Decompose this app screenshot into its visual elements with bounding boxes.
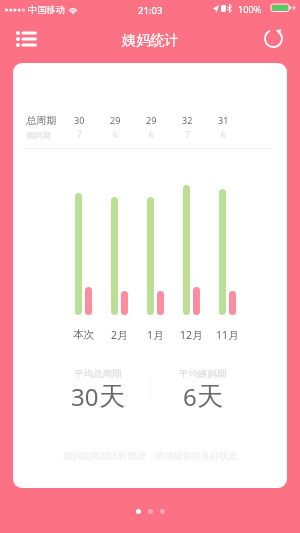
staticText: 姨妈统计	[122, 31, 179, 49]
staticText: 平均总周期	[74, 368, 122, 380]
staticText: 7	[77, 129, 82, 140]
staticText: 31	[218, 114, 229, 126]
staticText: 32	[182, 114, 193, 126]
staticText: 7	[185, 129, 190, 140]
staticText: 29	[110, 114, 121, 126]
staticText: 21:03	[138, 4, 163, 17]
staticText: 12月	[180, 328, 203, 342]
staticText: 本次	[73, 328, 94, 341]
staticText: 天	[99, 380, 125, 413]
staticText: 30	[74, 114, 85, 126]
staticText: 中国移动	[28, 4, 65, 16]
staticText: 姨妈期	[26, 130, 51, 140]
button[interactable]: Menu	[10, 22, 43, 55]
staticText: 6	[113, 129, 118, 140]
staticText: 姨妈期周期比较规律，请继续保持良好状态	[63, 450, 238, 462]
staticText: 100%	[238, 3, 262, 16]
button[interactable]: Refresh	[257, 22, 290, 55]
staticText: 天	[197, 380, 223, 413]
staticText: 平均姨妈期	[179, 368, 227, 380]
staticText: 6	[149, 129, 154, 140]
staticText: 29	[146, 114, 157, 126]
staticText: 11月	[216, 328, 239, 342]
staticText: 总周期	[26, 114, 57, 127]
staticText: 2月	[111, 328, 128, 342]
staticText: 6	[183, 380, 197, 413]
staticText: 6	[221, 129, 226, 140]
staticText: 1月	[147, 328, 164, 342]
staticText: 30	[71, 380, 99, 413]
